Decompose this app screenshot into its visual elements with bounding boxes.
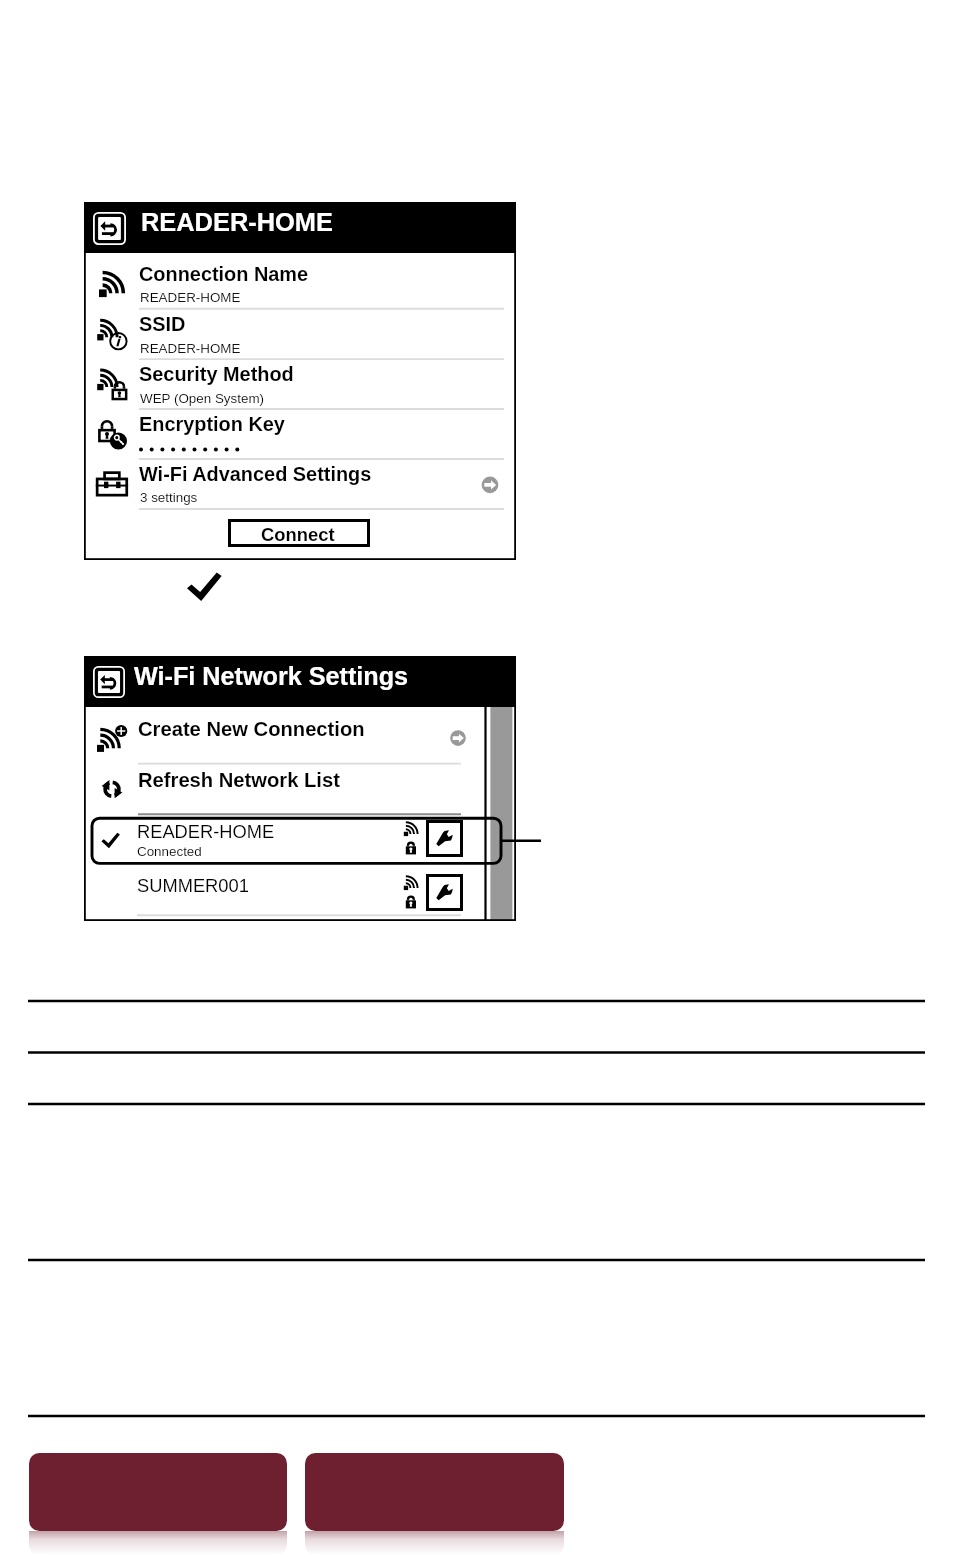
staticText: READER-HOME [140, 341, 241, 356]
staticText: WEP (Open System) [140, 391, 265, 406]
button[interactable]: Connection Name [84, 253, 516, 310]
staticText: Connect [261, 524, 335, 545]
staticText: Refresh Network List [138, 769, 340, 792]
button[interactable]: Create New Connection [84, 707, 485, 765]
staticText: Connected [137, 844, 202, 859]
staticText: READER-HOME [137, 821, 275, 842]
button[interactable]: SSID [84, 310, 516, 360]
button[interactable]: Previous page [29, 1453, 287, 1531]
button[interactable]: READER-HOME [84, 815, 485, 864]
staticText: Encryption Key [139, 413, 285, 436]
button[interactable]: Back [93, 666, 125, 698]
button[interactable]: Refresh Network List [84, 765, 485, 816]
button[interactable]: SUMMER001 [84, 865, 485, 917]
button[interactable] [84, 202, 516, 253]
button[interactable] [84, 656, 516, 707]
staticText: Wi-Fi Network Settings [134, 662, 409, 691]
button[interactable]: Wi-Fi Advanced Settings [84, 460, 516, 510]
button[interactable]: Back [93, 212, 126, 245]
staticText: Security Method [139, 363, 294, 386]
button[interactable] [228, 519, 370, 547]
staticText: READER-HOME [140, 290, 241, 305]
button[interactable]: Settings for READER-HOME [426, 820, 463, 857]
staticText: READER-HOME [141, 208, 333, 237]
button[interactable]: Security Method [84, 360, 516, 410]
staticText: SSID [139, 313, 186, 336]
button[interactable]: Settings for SUMMER001 [426, 874, 463, 911]
staticText: SUMMER001 [137, 875, 249, 896]
button[interactable]: Encryption Key [84, 410, 516, 460]
staticText: 3 settings [140, 490, 198, 505]
staticText: Wi-Fi Advanced Settings [139, 463, 372, 486]
staticText: Connection Name [139, 263, 309, 286]
button[interactable]: Next page [305, 1453, 564, 1531]
staticText: Create New Connection [138, 718, 365, 741]
